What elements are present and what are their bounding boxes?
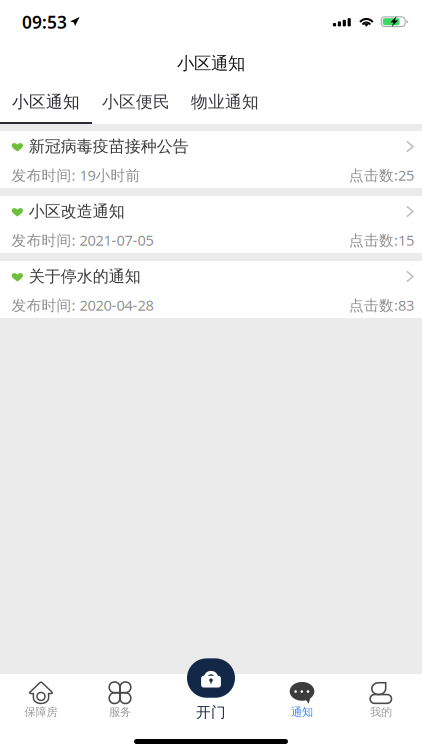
staticText: 关于停水的通知	[29, 267, 141, 286]
button[interactable]: 通知	[264, 677, 340, 723]
button[interactable]: 小区便民	[92, 88, 180, 122]
staticText: 09:53	[22, 10, 67, 33]
staticText: 发布时间: 19小时前	[12, 165, 141, 185]
staticText: 小区通知	[177, 53, 245, 74]
button[interactable]: 关于停水的通知	[0, 261, 422, 318]
staticText: 发布时间: 2020-04-28	[12, 295, 154, 315]
staticText: 我的	[370, 705, 392, 719]
staticText: 开门	[196, 703, 226, 722]
staticText: 点击数:25	[349, 165, 414, 185]
staticText: 通知	[291, 705, 313, 719]
staticText: 点击数:15	[349, 230, 414, 250]
staticText: 小区改造通知	[29, 202, 125, 221]
staticText: 保障房	[24, 705, 57, 719]
button[interactable]: 我的	[340, 677, 422, 723]
staticText: 小区便民	[102, 91, 170, 112]
staticText: 新冠病毒疫苗接种公告	[29, 137, 189, 156]
staticText: 点击数:83	[349, 295, 414, 315]
staticText: 发布时间: 2021-07-05	[12, 230, 154, 250]
button[interactable]: 开门	[158, 659, 264, 721]
staticText: 服务	[109, 705, 131, 719]
button[interactable]: 小区通知	[0, 88, 92, 122]
button[interactable]: 物业通知	[180, 88, 270, 122]
button[interactable]: 新冠病毒疫苗接种公告	[0, 131, 422, 188]
staticText: 小区通知	[12, 91, 80, 112]
button[interactable]: 保障房	[0, 677, 82, 723]
button[interactable]: 小区改造通知	[0, 196, 422, 253]
staticText: 物业通知	[191, 91, 259, 112]
button[interactable]: 服务	[82, 677, 158, 723]
